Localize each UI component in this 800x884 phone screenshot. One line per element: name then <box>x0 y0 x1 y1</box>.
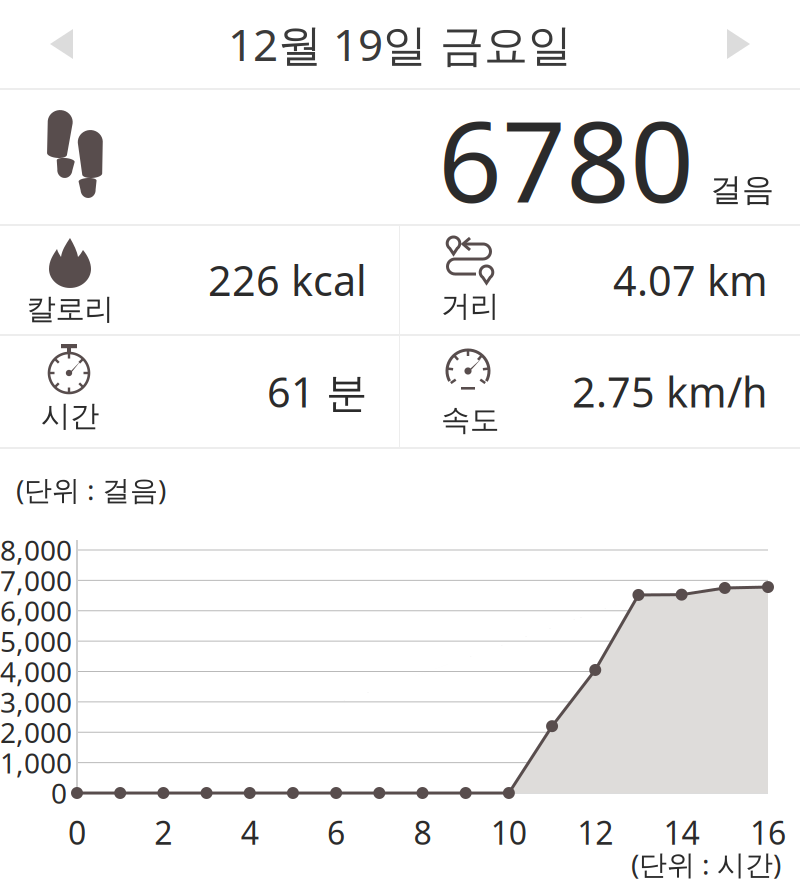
staticText: 1,000 <box>0 744 72 781</box>
staticText: (단위 : 시간) <box>631 845 781 883</box>
button[interactable]: Next day <box>708 14 770 74</box>
staticText: 4.07 km <box>613 253 768 307</box>
staticText: 6 <box>327 811 345 853</box>
staticText: 걸음 <box>710 170 774 209</box>
staticText: 칼로리 <box>26 291 113 327</box>
staticText: 12월 19일 금요일 <box>228 15 572 73</box>
staticText: 6,000 <box>0 592 72 629</box>
staticText: 16 <box>750 811 786 853</box>
staticText: 14 <box>664 811 700 853</box>
button[interactable]: Previous day <box>30 14 92 74</box>
staticText: 시간 <box>41 398 99 434</box>
staticText: 0 <box>51 774 67 812</box>
staticText: 2,000 <box>0 714 72 751</box>
staticText: 10 <box>491 811 527 853</box>
staticText: 5,000 <box>0 622 72 660</box>
staticText: 4 <box>241 811 259 853</box>
staticText: 8,000 <box>0 531 72 569</box>
staticText: (단위 : 걸음) <box>16 471 166 508</box>
staticText: 거리 <box>441 288 499 324</box>
staticText: 61 분 <box>267 364 367 419</box>
staticText: 0 <box>68 811 86 853</box>
staticText: 3,000 <box>0 683 72 720</box>
staticText: 226 kcal <box>208 253 367 307</box>
staticText: 6780 <box>438 85 694 233</box>
staticText: 12 <box>577 811 613 853</box>
staticText: 2 <box>154 811 172 853</box>
staticText: 속도 <box>441 402 499 438</box>
staticText: 2.75 km/h <box>572 364 768 419</box>
staticText: 7,000 <box>0 562 72 599</box>
staticText: 4,000 <box>0 653 72 690</box>
staticText: 8 <box>413 811 431 853</box>
